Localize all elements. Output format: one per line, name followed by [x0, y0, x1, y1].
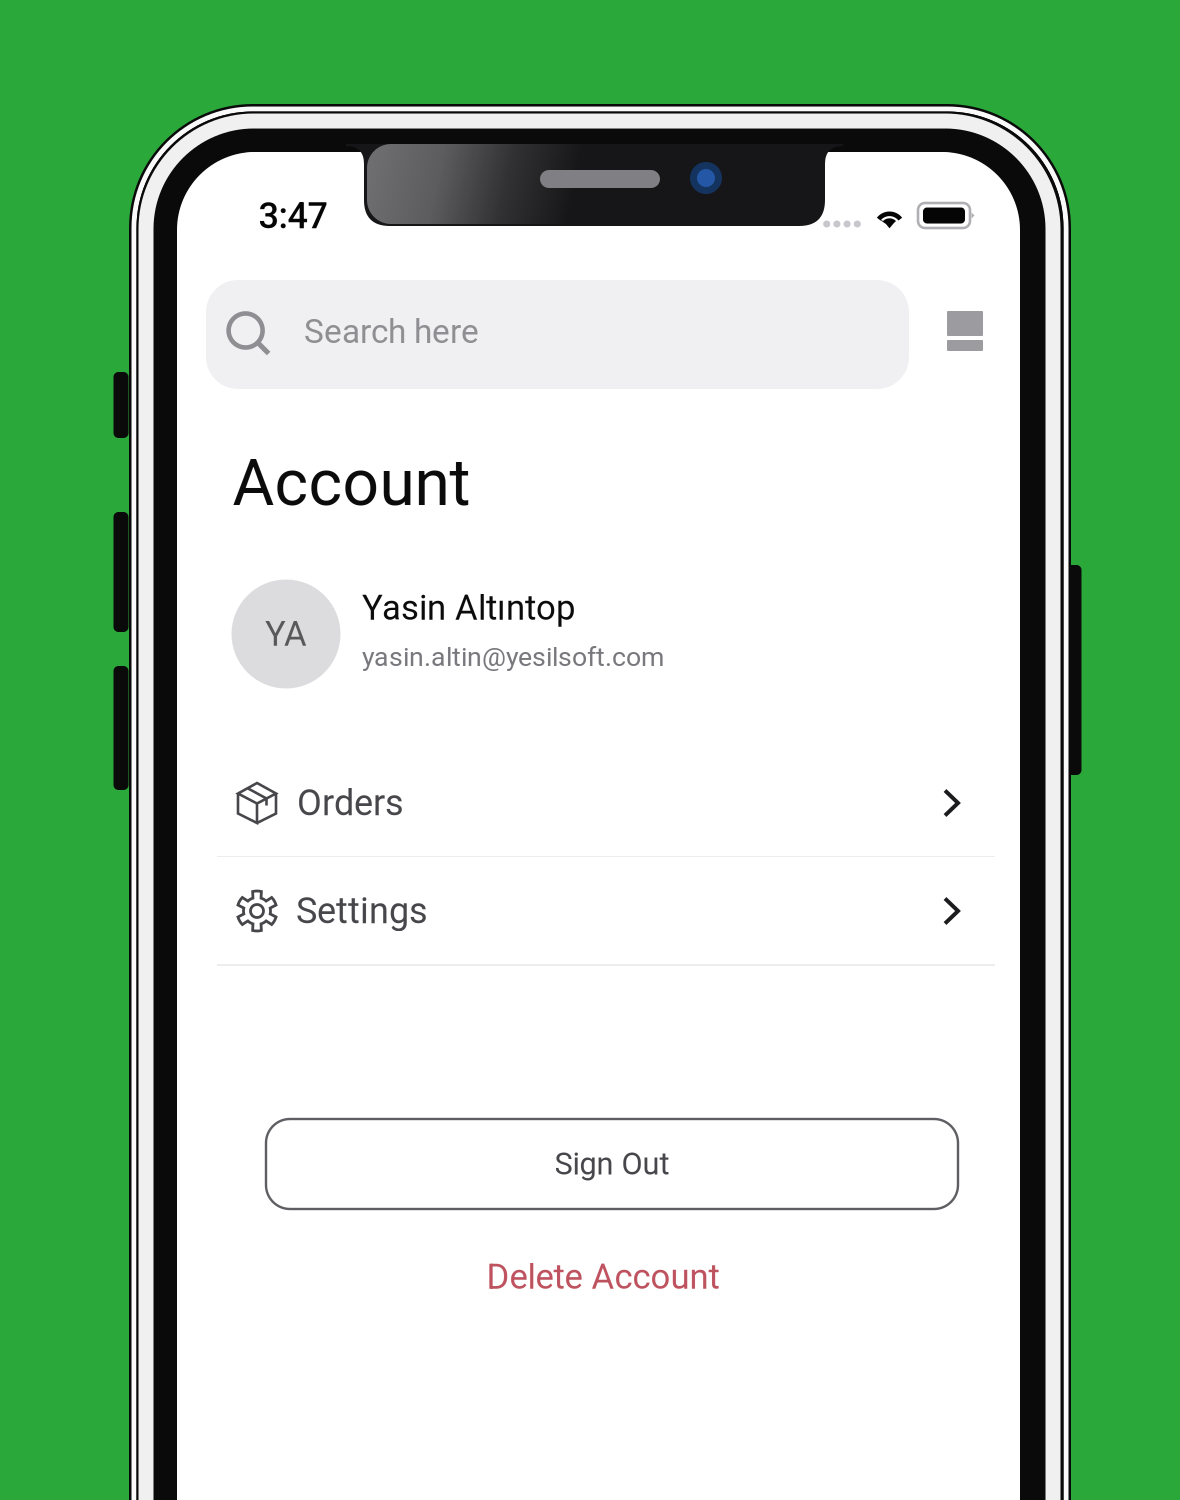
staticText: Orders: [297, 782, 404, 824]
staticText: Yasin Altıntop: [362, 588, 575, 628]
button[interactable]: Change layout: [933, 299, 997, 363]
staticText: Search here: [304, 312, 479, 351]
button[interactable]: Orders: [180, 749, 1016, 857]
button[interactable]: Sign Out: [266, 1119, 958, 1209]
staticText: Settings: [296, 890, 428, 932]
button[interactable]: Delete Account: [393, 1245, 813, 1309]
staticText: Sign Out: [554, 1146, 669, 1182]
staticText: YA: [265, 614, 307, 654]
button[interactable]: Search here: [206, 280, 909, 389]
staticText: Delete Account: [486, 1257, 719, 1297]
button[interactable]: Settings: [180, 857, 1016, 965]
staticText: 3:47: [258, 195, 327, 237]
staticText: yasin.altin@yesilsoft.com: [362, 641, 664, 673]
staticText: Account: [232, 445, 470, 520]
